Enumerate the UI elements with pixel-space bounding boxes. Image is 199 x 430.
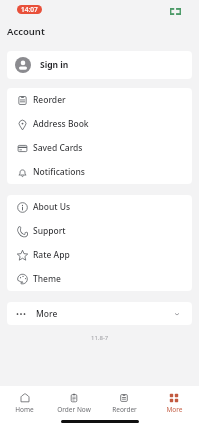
button[interactable]: Order Now — [49, 386, 99, 414]
button[interactable]: Saved Cards — [7, 136, 192, 160]
button[interactable]: Support — [7, 219, 192, 243]
staticText: 11.8-7 — [91, 334, 109, 342]
button[interactable]: More — [149, 386, 199, 414]
staticText: Address Book — [33, 118, 89, 130]
button[interactable]: Theme — [7, 267, 192, 291]
button[interactable]: Reorder — [7, 88, 192, 112]
button[interactable]: Rate App — [7, 243, 192, 267]
other: Expand — [173, 310, 181, 318]
staticText: Sign in — [40, 59, 69, 71]
staticText: Support — [33, 225, 66, 237]
button[interactable]: Address Book — [7, 112, 192, 136]
staticText: Reorder — [33, 94, 66, 106]
staticText: About Us — [33, 201, 71, 213]
button[interactable]: Sign in — [7, 51, 192, 79]
staticText: Saved Cards — [33, 142, 83, 154]
button[interactable]: About Us — [7, 195, 192, 219]
staticText: Rate App — [33, 249, 70, 261]
staticText: 14:07 — [21, 5, 38, 14]
staticText: Home — [15, 405, 34, 414]
staticText: Order Now — [57, 405, 91, 414]
staticText: Reorder — [112, 405, 137, 414]
staticText: Account — [7, 25, 45, 38]
button[interactable]: Notifications — [7, 160, 192, 184]
staticText: Notifications — [33, 166, 85, 178]
button[interactable]: Home — [0, 386, 49, 414]
staticText: Theme — [33, 273, 61, 285]
button[interactable]: More — [7, 302, 192, 325]
button[interactable]: Reorder — [99, 386, 149, 414]
staticText: More — [36, 308, 58, 320]
staticText: More — [166, 405, 183, 414]
